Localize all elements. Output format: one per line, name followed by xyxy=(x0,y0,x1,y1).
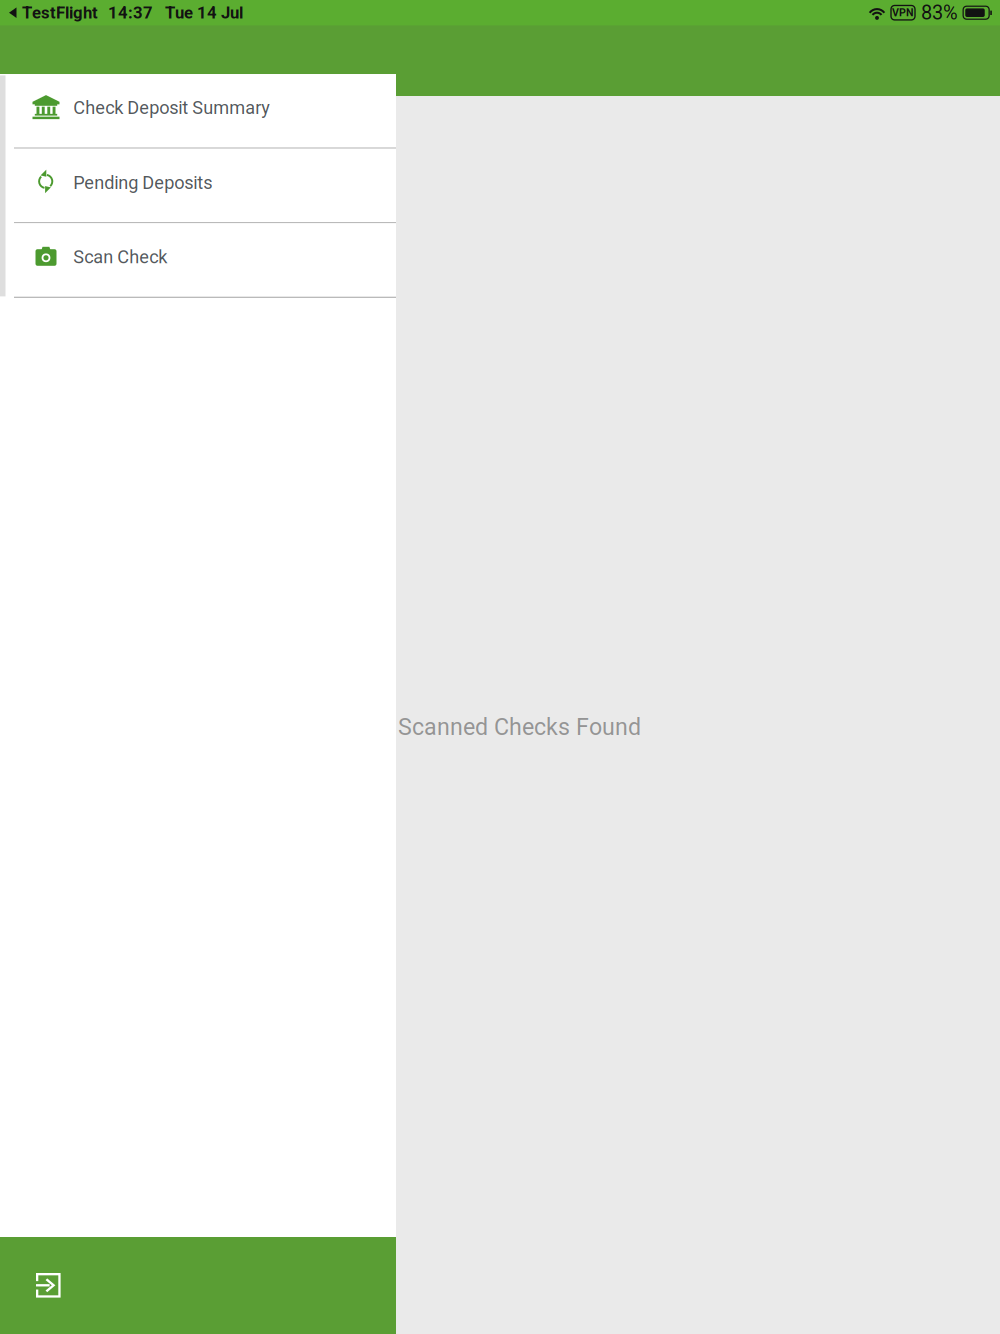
staticText: Scanned Checks Found xyxy=(398,713,641,741)
staticText: VPN xyxy=(892,6,914,19)
button[interactable]: Sign Out xyxy=(0,1237,396,1334)
staticText: Tue 14 Jul xyxy=(165,3,243,22)
button[interactable]: Scan Check xyxy=(0,223,396,297)
staticText: 14:37 xyxy=(108,3,153,22)
button[interactable]: Check Deposit Summary xyxy=(0,74,396,147)
staticText: Pending Deposits xyxy=(73,172,212,193)
staticText: Check Deposit Summary xyxy=(73,97,270,118)
staticText: TestFlight xyxy=(22,3,98,22)
staticText: 83% xyxy=(921,1,958,24)
button[interactable]: Pending Deposits xyxy=(0,149,396,222)
staticText: Scan Check xyxy=(73,246,167,268)
